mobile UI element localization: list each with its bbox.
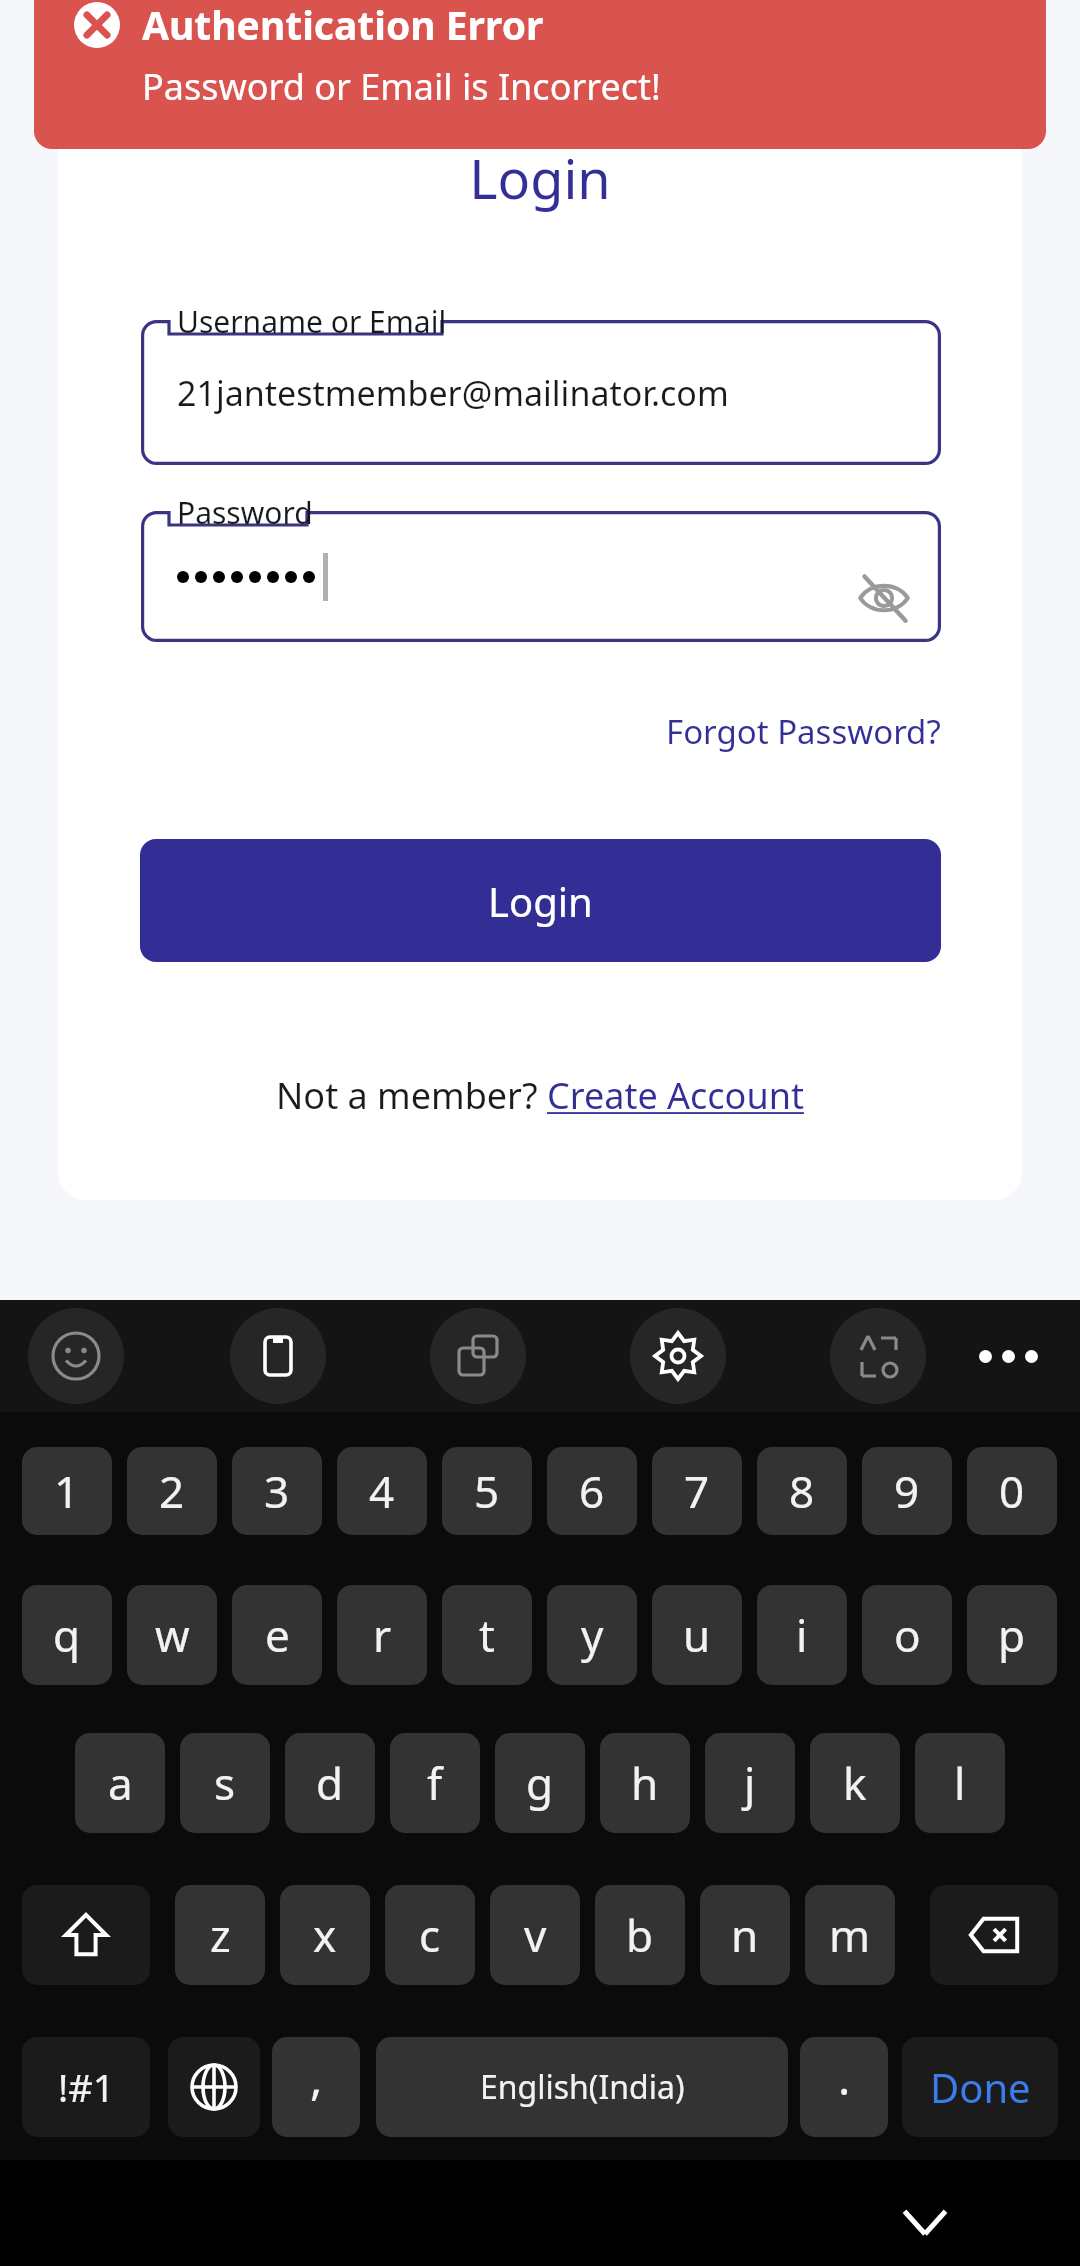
button[interactable]: Password xyxy=(141,511,941,642)
button[interactable]: h xyxy=(600,1733,690,1833)
staticText: i xyxy=(796,1605,808,1665)
staticText: h xyxy=(631,1753,659,1813)
staticText: 6 xyxy=(579,1461,605,1521)
button[interactable]: q xyxy=(22,1585,112,1685)
button[interactable]: 2 xyxy=(127,1447,217,1535)
button[interactable]: b xyxy=(595,1885,685,1985)
staticText: t xyxy=(479,1605,495,1665)
button[interactable]: 9 xyxy=(862,1447,952,1535)
button[interactable]: Create Account xyxy=(547,1071,804,1120)
staticText: 21jantestmember@mailinator.com xyxy=(177,370,729,416)
button[interactable]: l xyxy=(915,1733,1005,1833)
staticText: k xyxy=(843,1753,867,1813)
button[interactable]: Clipboard xyxy=(230,1308,326,1404)
staticText: 0 xyxy=(999,1461,1025,1521)
button[interactable]: 8 xyxy=(757,1447,847,1535)
button[interactable]: Done xyxy=(902,2037,1058,2137)
staticText: e xyxy=(265,1605,290,1665)
staticText: l xyxy=(954,1753,966,1813)
staticText: m xyxy=(829,1905,871,1965)
staticText: 3 xyxy=(264,1461,290,1521)
button[interactable]: 5 xyxy=(442,1447,532,1535)
staticText: 9 xyxy=(894,1461,920,1521)
button[interactable]: 0 xyxy=(967,1447,1057,1535)
staticText: 8 xyxy=(789,1461,815,1521)
button[interactable]: Show password xyxy=(838,552,930,644)
button[interactable]: Username or Email xyxy=(141,320,941,465)
button[interactable]: a xyxy=(75,1733,165,1833)
button[interactable]: Backspace xyxy=(930,1885,1058,1985)
button[interactable]: w xyxy=(127,1585,217,1685)
staticText: r xyxy=(373,1605,392,1665)
button[interactable]: k xyxy=(810,1733,900,1833)
button[interactable]: , xyxy=(272,2037,360,2137)
staticText: x xyxy=(313,1905,337,1965)
staticText: z xyxy=(210,1905,231,1965)
button[interactable]: Emoji xyxy=(28,1308,124,1404)
button[interactable]: d xyxy=(285,1733,375,1833)
staticText: 1 xyxy=(54,1461,80,1521)
staticText: Authentication Error xyxy=(142,0,544,51)
staticText: b xyxy=(626,1905,654,1965)
button[interactable]: Login xyxy=(140,839,941,962)
button[interactable]: Translate xyxy=(430,1308,526,1404)
button[interactable]: g xyxy=(495,1733,585,1833)
button[interactable]: m xyxy=(805,1885,895,1985)
staticText: j xyxy=(744,1753,756,1813)
button[interactable]: Text correction xyxy=(830,1308,926,1404)
button[interactable]: English(India) xyxy=(376,2037,788,2137)
button[interactable]: 6 xyxy=(547,1447,637,1535)
button[interactable]: 4 xyxy=(337,1447,427,1535)
staticText: 5 xyxy=(474,1461,500,1521)
staticText: u xyxy=(683,1605,711,1665)
button[interactable]: o xyxy=(862,1585,952,1685)
button[interactable]: . xyxy=(800,2037,888,2137)
staticText: w xyxy=(155,1605,190,1665)
button[interactable]: Change keyboard language xyxy=(168,2037,260,2137)
button[interactable]: u xyxy=(652,1585,742,1685)
staticText: f xyxy=(427,1753,443,1813)
button[interactable]: r xyxy=(337,1585,427,1685)
button[interactable]: y xyxy=(547,1585,637,1685)
staticText: Login xyxy=(469,141,611,215)
staticText: g xyxy=(526,1753,554,1813)
button[interactable]: x xyxy=(280,1885,370,1985)
button[interactable]: 3 xyxy=(232,1447,322,1535)
button[interactable]: j xyxy=(705,1733,795,1833)
button[interactable]: s xyxy=(180,1733,270,1833)
staticText: 7 xyxy=(684,1461,710,1521)
button[interactable]: Settings xyxy=(630,1308,726,1404)
button[interactable]: e xyxy=(232,1585,322,1685)
staticText: a xyxy=(108,1753,133,1813)
button[interactable]: !#1 xyxy=(22,2037,150,2137)
button[interactable]: 1 xyxy=(22,1447,112,1535)
staticText: Login xyxy=(488,874,593,928)
button[interactable]: v xyxy=(490,1885,580,1985)
button[interactable]: z xyxy=(175,1885,265,1985)
staticText: s xyxy=(214,1753,236,1813)
staticText: o xyxy=(894,1605,921,1665)
staticText: y xyxy=(581,1605,604,1665)
staticText: v xyxy=(524,1905,547,1965)
staticText: c xyxy=(419,1905,441,1965)
button[interactable]: 7 xyxy=(652,1447,742,1535)
button[interactable]: n xyxy=(700,1885,790,1985)
staticText: Password or Email is Incorrect! xyxy=(142,62,661,111)
staticText: 4 xyxy=(369,1461,395,1521)
button[interactable]: More options xyxy=(960,1308,1056,1404)
button[interactable]: i xyxy=(757,1585,847,1685)
staticText: Done xyxy=(930,2060,1031,2114)
button[interactable]: f xyxy=(390,1733,480,1833)
button[interactable]: t xyxy=(442,1585,532,1685)
button[interactable]: Shift xyxy=(22,1885,150,1985)
staticText: p xyxy=(998,1605,1026,1665)
button[interactable]: p xyxy=(967,1585,1057,1685)
button[interactable]: Forgot Password? xyxy=(620,700,941,762)
staticText: Not a member? xyxy=(276,1071,547,1120)
staticText: 2 xyxy=(159,1461,185,1521)
button[interactable]: Hide keyboard xyxy=(880,2176,970,2266)
staticText: n xyxy=(731,1905,759,1965)
staticText: English(India) xyxy=(480,2065,685,2109)
staticText: Forgot Password? xyxy=(666,709,941,754)
button[interactable]: c xyxy=(385,1885,475,1985)
